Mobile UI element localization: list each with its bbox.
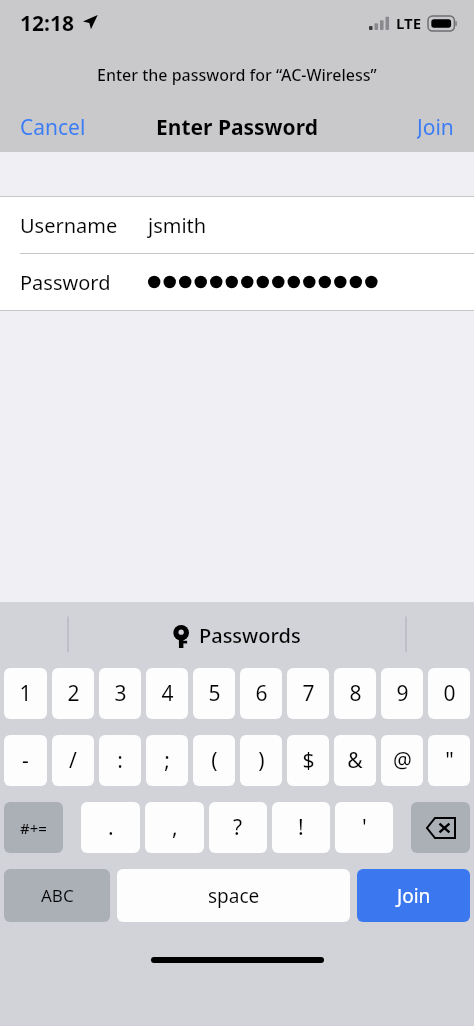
button[interactable]: ; — [146, 735, 188, 786]
button[interactable]: Username — [0, 197, 474, 253]
staticText: , — [172, 813, 178, 842]
staticText: Join — [397, 883, 431, 909]
button[interactable]: @ — [381, 735, 423, 786]
button[interactable]: Cancel — [0, 105, 106, 149]
button[interactable]: 6 — [240, 668, 282, 719]
staticText: 4 — [161, 679, 174, 708]
button[interactable]: - — [4, 735, 47, 786]
staticText: / — [69, 746, 77, 775]
button[interactable]: & — [334, 735, 376, 786]
staticText: Cancel — [20, 113, 86, 141]
staticText: LTE — [396, 13, 422, 33]
button[interactable]: 5 — [193, 668, 235, 719]
staticText: - — [22, 746, 29, 775]
button[interactable]: ABC — [4, 869, 110, 922]
staticText: ABC — [41, 884, 74, 907]
staticText: ( — [211, 746, 218, 775]
button[interactable]: 2 — [52, 668, 94, 719]
staticText: #+= — [20, 818, 47, 838]
staticText: Passwords — [199, 622, 301, 649]
staticText: Enter Password — [156, 113, 318, 142]
button[interactable]: 3 — [99, 668, 141, 719]
staticText: $ — [302, 746, 315, 775]
button[interactable]: Password — [0, 254, 474, 310]
staticText: ; — [164, 746, 170, 775]
staticText: " — [445, 746, 454, 775]
staticText: jsmith — [148, 212, 207, 239]
staticText: space — [208, 883, 260, 909]
button[interactable]: 0 — [428, 668, 470, 719]
button[interactable]: / — [52, 735, 94, 786]
button[interactable]: 8 — [334, 668, 376, 719]
button[interactable]: 9 — [381, 668, 423, 719]
staticText: 5 — [208, 679, 221, 708]
button[interactable]: 7 — [287, 668, 329, 719]
staticText: ! — [298, 813, 304, 842]
button[interactable]: #+= — [4, 802, 63, 853]
button[interactable]: : — [99, 735, 141, 786]
staticText: 9 — [396, 679, 409, 708]
button[interactable]: " — [428, 735, 470, 786]
staticText: 8 — [349, 679, 362, 708]
staticText: @ — [393, 746, 412, 775]
staticText: Username — [20, 212, 118, 239]
staticText: & — [347, 746, 363, 775]
button[interactable]: . — [81, 802, 140, 853]
button[interactable]: 4 — [146, 668, 188, 719]
staticText: ) — [258, 746, 265, 775]
staticText: 12:18 — [20, 9, 74, 38]
button[interactable]: ? — [209, 802, 267, 853]
button[interactable]: ( — [193, 735, 235, 786]
staticText: Enter the password for “AC-Wireless” — [97, 64, 377, 86]
staticText: Password — [20, 269, 111, 296]
staticText: 6 — [255, 679, 268, 708]
button[interactable]: 1 — [4, 668, 47, 719]
staticText: 1 — [19, 679, 32, 708]
button[interactable]: , — [145, 802, 204, 853]
staticText: : — [117, 746, 123, 775]
staticText: 3 — [114, 679, 127, 708]
staticText: 0 — [443, 679, 456, 708]
button[interactable]: ) — [240, 735, 282, 786]
button[interactable]: space — [117, 869, 350, 922]
staticText: 2 — [67, 679, 80, 708]
staticText: 7 — [302, 679, 315, 708]
staticText: ' — [362, 813, 367, 842]
button[interactable]: Delete — [411, 802, 470, 853]
button[interactable]: Join — [357, 869, 470, 922]
staticText: Join — [417, 113, 454, 141]
button[interactable]: $ — [287, 735, 329, 786]
staticText: . — [108, 813, 114, 842]
staticText: ? — [233, 813, 243, 842]
button[interactable]: ! — [272, 802, 330, 853]
button[interactable]: Join — [397, 105, 474, 149]
button[interactable]: Passwords — [161, 616, 313, 655]
button[interactable]: ' — [335, 802, 393, 853]
